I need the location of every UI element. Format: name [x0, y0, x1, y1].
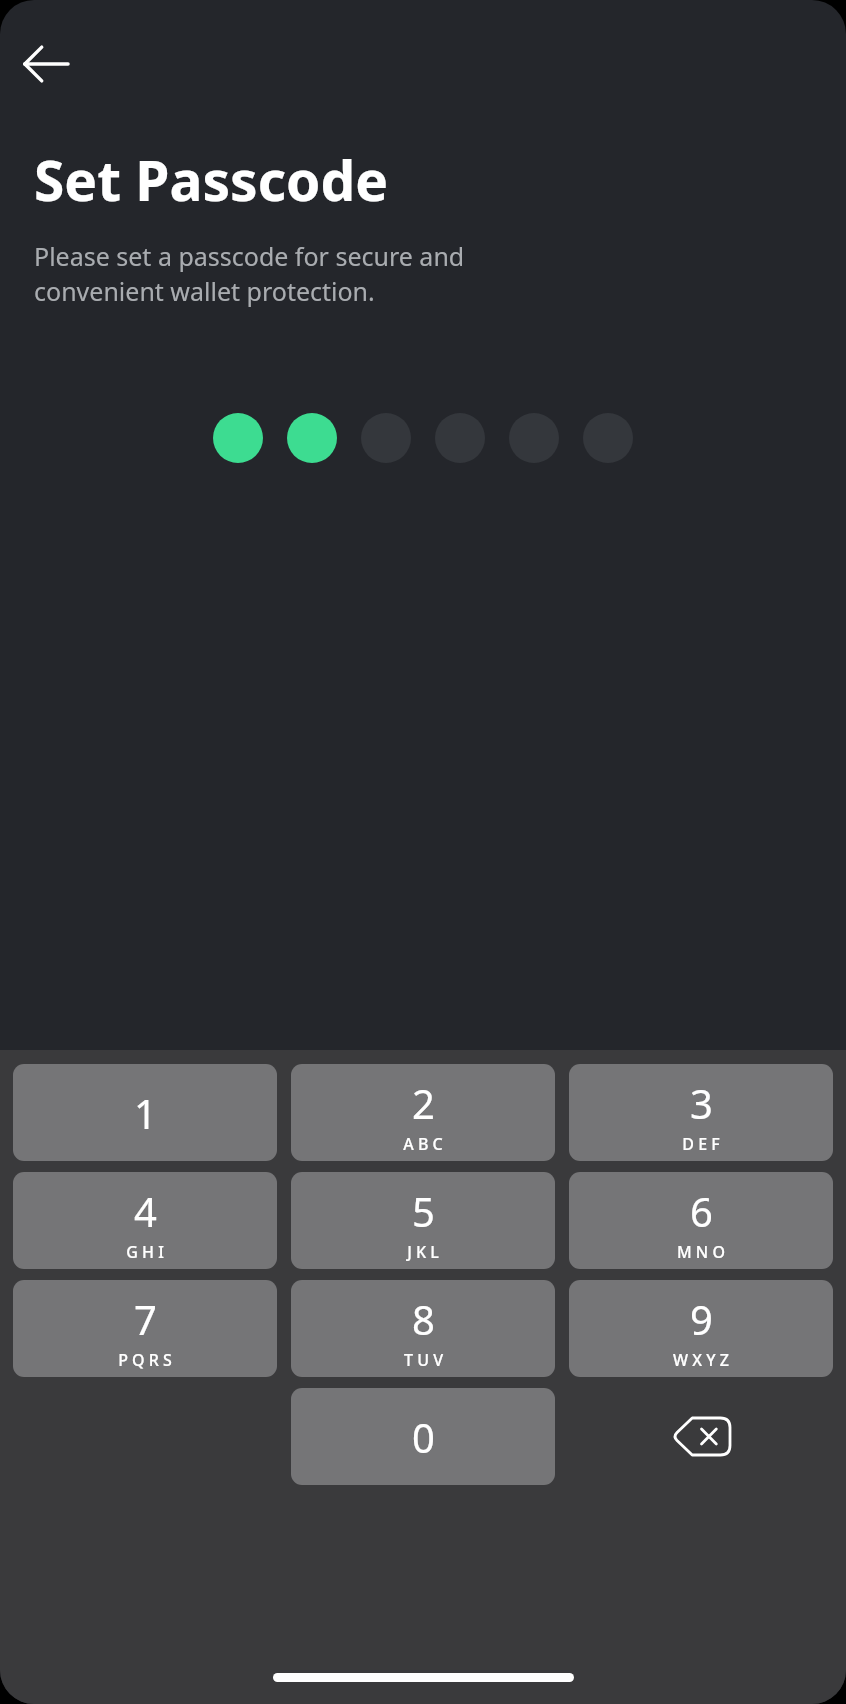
staticText: Please set a passcode for secure and con… [34, 239, 465, 309]
staticText: 5 [412, 1184, 435, 1238]
staticText: 0 [412, 1410, 435, 1464]
staticText: G H I [126, 1241, 164, 1263]
staticText: 3 [690, 1076, 713, 1130]
button[interactable]: Backspace [569, 1388, 833, 1485]
staticText: 9 [690, 1292, 713, 1346]
staticText: M N O [677, 1241, 725, 1263]
staticText: Set Passcode [34, 142, 388, 217]
staticText: W X Y Z [673, 1349, 729, 1371]
button[interactable]: 3 [569, 1064, 833, 1161]
staticText: P Q R S [118, 1349, 172, 1371]
button[interactable]: 5 [291, 1172, 555, 1269]
staticText: A B C [403, 1133, 443, 1155]
staticText: D E F [682, 1133, 720, 1155]
button[interactable]: 9 [569, 1280, 833, 1377]
staticText: J K L [407, 1241, 439, 1263]
button[interactable]: 1 [13, 1064, 277, 1161]
button[interactable]: 2 [291, 1064, 555, 1161]
staticText: 1 [134, 1086, 157, 1140]
button[interactable]: 7 [13, 1280, 277, 1377]
staticText: 7 [134, 1292, 157, 1346]
staticText: 2 [412, 1076, 435, 1130]
staticText: 8 [412, 1292, 435, 1346]
staticText: 6 [690, 1184, 713, 1238]
staticText: 4 [134, 1184, 157, 1238]
button[interactable]: 4 [13, 1172, 277, 1269]
button[interactable]: Back [14, 32, 78, 96]
button[interactable]: 6 [569, 1172, 833, 1269]
button[interactable]: 0 [291, 1388, 555, 1485]
staticText: T U V [404, 1349, 443, 1371]
button[interactable]: 8 [291, 1280, 555, 1377]
